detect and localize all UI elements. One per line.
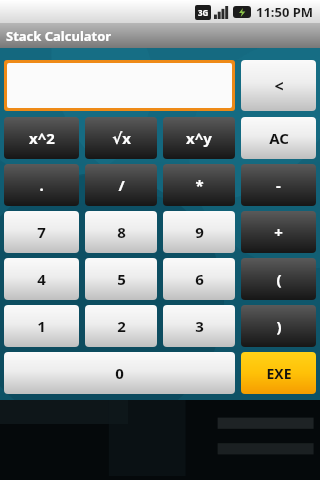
button[interactable]: x^y bbox=[163, 117, 235, 159]
staticText: 9 bbox=[195, 222, 204, 242]
staticText: 0 bbox=[115, 363, 124, 383]
button[interactable]: 8 bbox=[85, 211, 157, 253]
button[interactable]: 3 bbox=[163, 305, 235, 347]
button[interactable]: Stack Calculator bbox=[0, 23, 320, 48]
staticText: 3 bbox=[195, 316, 204, 336]
button[interactable]: / bbox=[85, 164, 157, 206]
button[interactable]: 1 bbox=[4, 305, 79, 347]
staticText: EXE bbox=[266, 364, 292, 383]
button[interactable]: * bbox=[163, 164, 235, 206]
button[interactable]: ) bbox=[241, 305, 316, 347]
button[interactable]: 9 bbox=[163, 211, 235, 253]
staticText: x^y bbox=[186, 128, 212, 148]
button[interactable]: < bbox=[241, 60, 316, 111]
staticText: 8 bbox=[117, 222, 126, 242]
staticText: 3G bbox=[198, 7, 209, 18]
button[interactable]: √x bbox=[85, 117, 157, 159]
button[interactable]: 0 bbox=[4, 352, 235, 394]
staticText: 4 bbox=[37, 269, 46, 289]
staticText: 6 bbox=[195, 269, 204, 289]
button[interactable] bbox=[7, 63, 232, 108]
staticText: AC bbox=[269, 128, 289, 148]
staticText: 7 bbox=[37, 222, 46, 242]
staticText: ( bbox=[276, 269, 282, 289]
staticText: √x bbox=[112, 128, 131, 148]
button[interactable]: 2 bbox=[85, 305, 157, 347]
staticText: 5 bbox=[117, 269, 126, 289]
button[interactable]: . bbox=[4, 164, 79, 206]
button[interactable]: 7 bbox=[4, 211, 79, 253]
button[interactable]: EXE bbox=[241, 352, 316, 394]
button[interactable]: x^2 bbox=[4, 117, 79, 159]
button[interactable]: ( bbox=[241, 258, 316, 300]
button[interactable]: + bbox=[241, 211, 316, 253]
staticText: < bbox=[274, 75, 284, 97]
staticText: + bbox=[274, 222, 283, 242]
staticText: Stack Calculator bbox=[6, 27, 112, 45]
staticText: . bbox=[39, 175, 44, 195]
staticText: 2 bbox=[117, 316, 126, 336]
staticText: - bbox=[276, 175, 281, 195]
staticText: x^2 bbox=[29, 128, 55, 148]
button[interactable]: - bbox=[241, 164, 316, 206]
staticText: * bbox=[195, 175, 204, 195]
staticText: 11:50 PM bbox=[256, 3, 314, 21]
staticText: / bbox=[118, 175, 125, 195]
button[interactable]: AC bbox=[241, 117, 316, 159]
button[interactable]: 6 bbox=[163, 258, 235, 300]
staticText: ) bbox=[276, 316, 282, 336]
button[interactable]: 4 bbox=[4, 258, 79, 300]
button[interactable]: 5 bbox=[85, 258, 157, 300]
staticText: 1 bbox=[37, 316, 46, 336]
